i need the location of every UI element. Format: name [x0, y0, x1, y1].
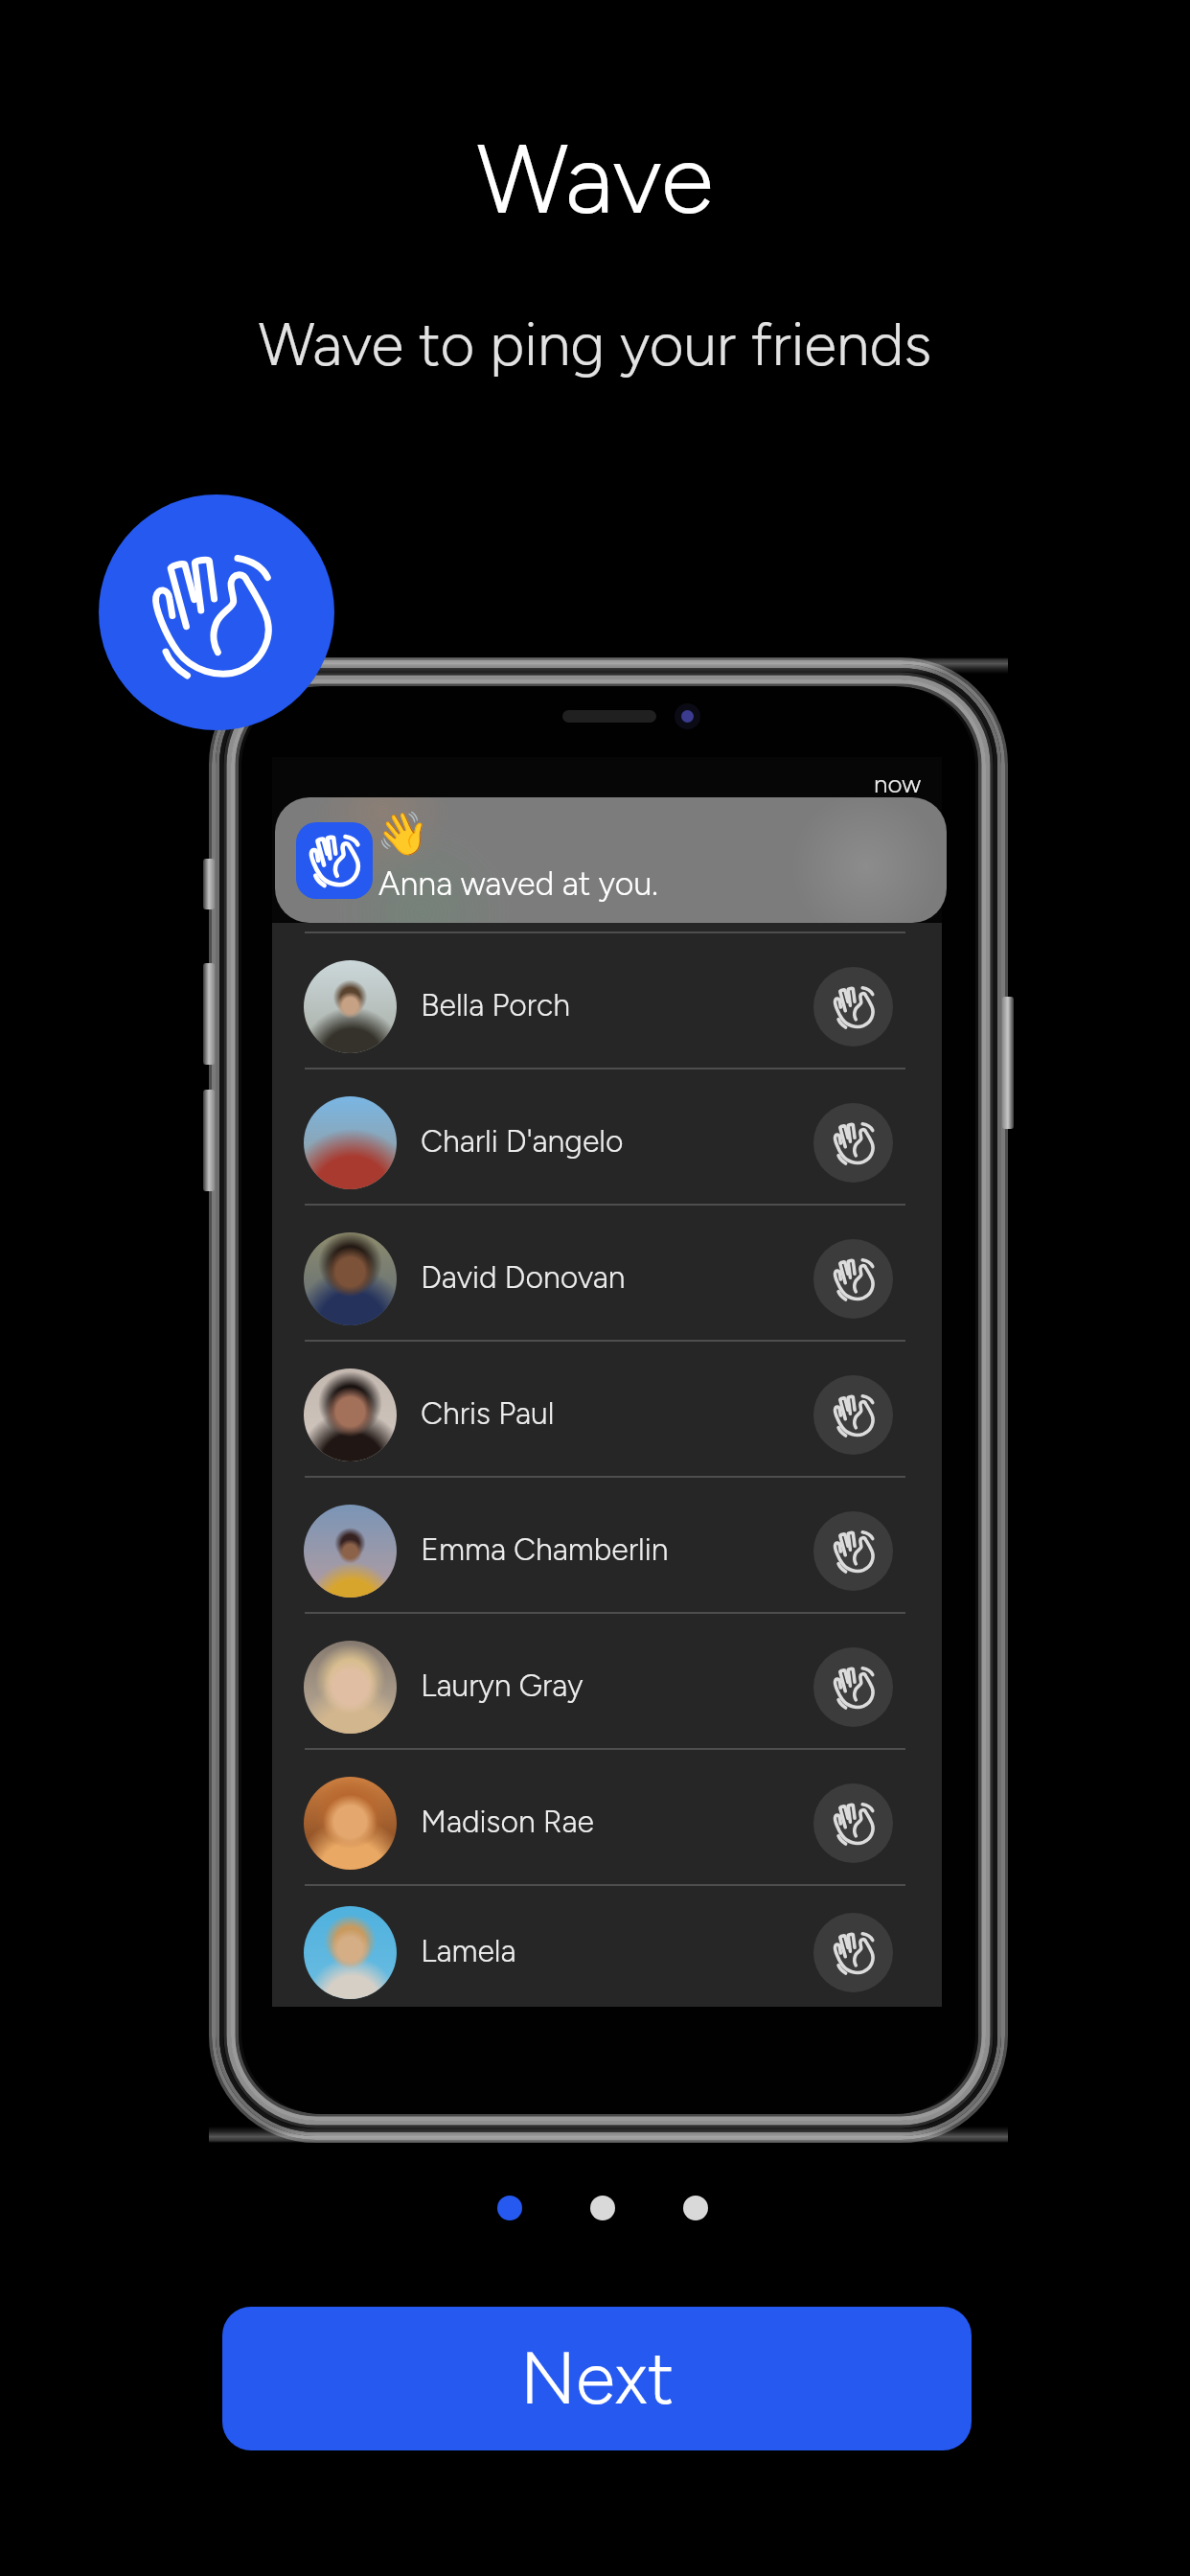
staticText: Next: [520, 2335, 675, 2422]
staticText: David Donovan: [421, 1259, 626, 1296]
button[interactable]: Wave at Charli D'angelo: [813, 1103, 893, 1183]
staticText: Chris Paul: [421, 1395, 555, 1432]
button[interactable]: [590, 2196, 615, 2220]
button[interactable]: Wave at Lauryn Gray: [813, 1647, 893, 1727]
staticText: 👋: [377, 809, 429, 859]
staticText: Madison Rae: [421, 1804, 594, 1840]
button[interactable]: Next: [222, 2307, 972, 2450]
button[interactable]: Emma Chamberlin: [272, 1478, 942, 1612]
staticText: Emma Chamberlin: [421, 1531, 669, 1568]
staticText: Lauryn Gray: [421, 1667, 584, 1704]
button[interactable]: Madison Rae: [272, 1750, 942, 1884]
button[interactable]: Wave at Bella Porch: [813, 967, 893, 1046]
button[interactable]: Chris Paul: [272, 1342, 942, 1476]
staticText: Wave: [0, 121, 1190, 237]
button[interactable]: David Donovan: [272, 1206, 942, 1340]
staticText: Charli D'angelo: [421, 1123, 624, 1160]
button[interactable]: Lauryn Gray: [272, 1614, 942, 1748]
button[interactable]: Wave at Madison Rae: [813, 1783, 893, 1863]
button[interactable]: [497, 2196, 522, 2220]
button[interactable]: [683, 2196, 708, 2220]
button[interactable]: Bella Porch: [272, 933, 942, 1068]
staticText: Wave to ping your friends: [0, 309, 1190, 379]
staticText: Anna waved at you.: [378, 864, 658, 904]
button[interactable]: Charli D'angelo: [272, 1069, 942, 1204]
staticText: now: [874, 769, 922, 798]
staticText: Lamela: [421, 1933, 516, 1969]
button[interactable]: Wave at Chris Paul: [813, 1375, 893, 1455]
button[interactable]: Wave at Emma Chamberlin: [813, 1511, 893, 1591]
button[interactable]: Wave at Lamela: [813, 1913, 893, 1992]
staticText: Bella Porch: [421, 987, 571, 1023]
button[interactable]: 👋: [275, 797, 947, 923]
button[interactable]: Lamela: [272, 1886, 942, 2007]
button[interactable]: Wave at David Donovan: [813, 1239, 893, 1319]
button[interactable]: Wave: [99, 494, 334, 730]
